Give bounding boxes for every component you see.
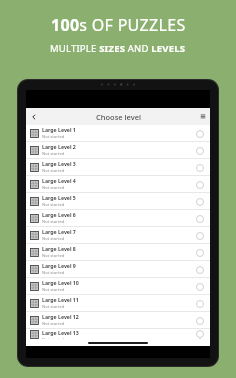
button[interactable]: Level 9 progress: [193, 263, 206, 276]
staticText: Not started: [42, 134, 65, 140]
staticText: Not started: [42, 185, 65, 191]
button[interactable]: Large Level 7: [26, 227, 210, 243]
button[interactable]: Large Level 13: [26, 329, 210, 339]
staticText: Large Level 3: [42, 160, 76, 167]
staticText: Choose level: [96, 112, 141, 122]
button[interactable]: Level 1 progress: [193, 127, 206, 140]
button[interactable]: Level 12 progress: [193, 314, 206, 327]
staticText: Not started: [42, 337, 65, 339]
button[interactable]: Large Level 6: [26, 210, 210, 226]
staticText: Large Level 6: [42, 211, 76, 218]
staticText: Large Level 12: [42, 313, 79, 320]
button[interactable]: Large Level 12: [26, 312, 210, 328]
staticText: Large Level 7: [42, 228, 76, 235]
button[interactable]: Large Level 11: [26, 295, 210, 311]
staticText: Large Level 4: [42, 177, 76, 184]
staticText: Not started: [42, 304, 65, 310]
staticText: Large Level 1: [42, 126, 76, 133]
button[interactable]: Level 5 progress: [193, 195, 206, 208]
button[interactable]: Large Level 10: [26, 278, 210, 294]
button[interactable]: Level 4 progress: [193, 178, 206, 191]
button[interactable]: Large Level 5: [26, 193, 210, 209]
staticText: MULTIPLE SIZES AND LEVELS: [50, 42, 186, 55]
button[interactable]: Large Level 9: [26, 261, 210, 277]
staticText: Large Level 11: [42, 296, 79, 303]
staticText: Large Level 8: [42, 245, 76, 252]
button[interactable]: Large Level 8: [26, 244, 210, 260]
staticText: Large Level 9: [42, 262, 76, 269]
button[interactable]: Menu: [195, 109, 210, 124]
button[interactable]: Level 7 progress: [193, 229, 206, 242]
staticText: Not started: [42, 253, 65, 259]
staticText: Not started: [42, 151, 65, 157]
button[interactable]: Level 2 progress: [193, 144, 206, 157]
button[interactable]: Level 6 progress: [193, 212, 206, 225]
button[interactable]: Level 8 progress: [193, 246, 206, 259]
staticText: Not started: [42, 236, 65, 242]
button[interactable]: Level 10 progress: [193, 280, 206, 293]
button[interactable]: Large Level 2: [26, 142, 210, 158]
staticText: Not started: [42, 287, 65, 293]
staticText: Not started: [42, 321, 65, 327]
staticText: Large Level 13: [42, 329, 79, 336]
button[interactable]: Level 11 progress: [193, 297, 206, 310]
staticText: Large Level 10: [42, 279, 79, 286]
staticText: Not started: [42, 202, 65, 208]
button[interactable]: Level 13 progress: [193, 329, 206, 339]
staticText: Not started: [42, 168, 65, 174]
staticText: Large Level 5: [42, 194, 76, 201]
staticText: Large Level 2: [42, 143, 76, 150]
button[interactable]: Back: [26, 109, 41, 124]
staticText: Not started: [42, 270, 65, 276]
button[interactable]: Large Level 4: [26, 176, 210, 192]
button[interactable]: Large Level 3: [26, 159, 210, 175]
staticText: Not started: [42, 219, 65, 225]
staticText: 100s OF PUZZLES: [51, 14, 186, 36]
button[interactable]: Level 3 progress: [193, 161, 206, 174]
button[interactable]: Large Level 1: [26, 125, 210, 141]
